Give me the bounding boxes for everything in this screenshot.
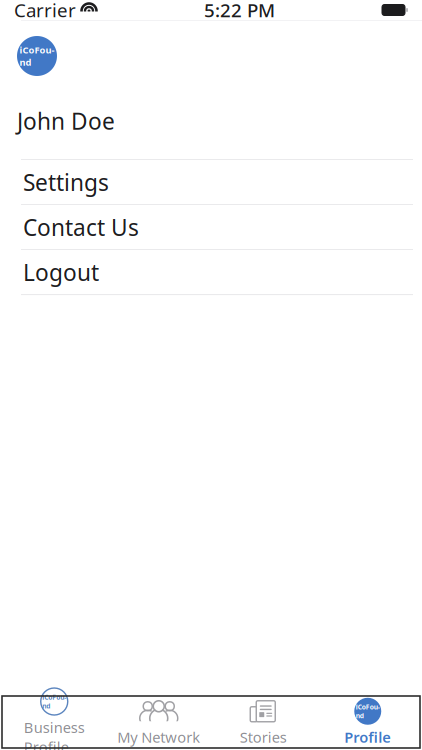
staticText: Profile	[344, 727, 391, 747]
button[interactable]: Contact Us	[0, 205, 422, 249]
staticText: Business Profile	[24, 717, 85, 750]
staticText: iCoFound	[19, 44, 54, 68]
staticText: Logout	[23, 257, 99, 287]
button[interactable]: iCoFound	[2, 697, 106, 747]
staticText: My Network	[117, 727, 200, 747]
button[interactable]: Logout	[0, 250, 422, 294]
staticText: John Doe	[17, 106, 115, 136]
staticText: 5:22 PM	[204, 0, 275, 22]
button[interactable]: iCoFound	[315, 697, 420, 747]
staticText: iCoFound	[356, 702, 380, 720]
button[interactable]: My Network	[106, 697, 211, 747]
staticText: Settings	[23, 167, 109, 197]
button[interactable]: Stories	[211, 697, 315, 747]
staticText: iCoFound	[42, 693, 66, 710]
staticText: Contact Us	[23, 212, 139, 242]
staticText: Carrier	[14, 0, 76, 22]
button[interactable]: Settings	[0, 160, 422, 204]
staticText: Stories	[240, 727, 287, 747]
